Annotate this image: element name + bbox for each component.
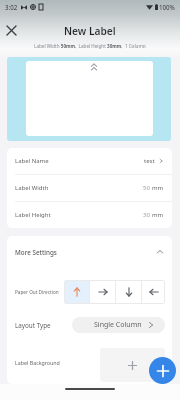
staticText: Single Column	[94, 320, 142, 330]
staticText: 100%	[159, 3, 175, 11]
button[interactable]: Single Column	[72, 317, 165, 333]
staticText: mm	[152, 211, 164, 219]
staticText: Label Height	[15, 211, 51, 219]
button[interactable]: Paper out up	[64, 280, 89, 304]
button[interactable]: Add element	[149, 357, 176, 384]
staticText: More Settings	[15, 248, 57, 257]
staticText: Label Name	[15, 157, 49, 165]
staticText: 30	[143, 211, 150, 219]
button[interactable]: Label Height	[7, 202, 172, 228]
staticText: mm	[152, 184, 164, 192]
button[interactable]: Label Name	[7, 148, 172, 174]
staticText: Layout Type	[15, 321, 51, 330]
button[interactable]: Close	[2, 21, 21, 40]
staticText: 50	[143, 184, 150, 192]
button[interactable]: Label Width	[7, 175, 172, 201]
staticText: Label Background	[15, 359, 60, 366]
button[interactable]: Paper out right	[90, 280, 115, 304]
staticText: Paper Out Direction	[15, 289, 59, 295]
button[interactable]: Paper out left	[142, 280, 165, 304]
staticText: Label Width 50mm, Label Height 30mm, 1 C…	[34, 43, 146, 49]
button[interactable]: More Settings	[7, 236, 172, 268]
button[interactable]: Add background image	[100, 348, 165, 382]
staticText: New Label	[64, 24, 116, 38]
staticText: Label Width	[15, 184, 49, 192]
staticText: test	[144, 157, 155, 165]
button[interactable]: Paper out down	[116, 280, 141, 304]
staticText: 3:02	[5, 3, 18, 11]
